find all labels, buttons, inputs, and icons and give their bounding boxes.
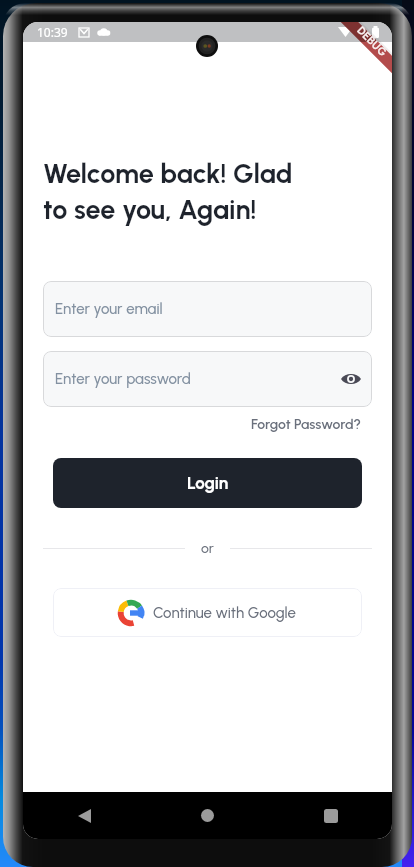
button[interactable]: Back <box>23 792 146 839</box>
staticText: Login <box>187 473 229 493</box>
button[interactable]: Forgot Password? <box>251 416 361 433</box>
button[interactable]: Login <box>53 458 362 508</box>
staticText: or <box>201 540 214 557</box>
button[interactable]: Enter your password <box>43 351 372 407</box>
staticText: Welcome back! Glad to see you, Again! <box>43 157 293 226</box>
button[interactable]: Recent apps <box>269 792 392 839</box>
button[interactable]: Home <box>146 792 269 839</box>
staticText: Forgot Password? <box>251 416 361 433</box>
staticText: Enter your password <box>55 370 191 388</box>
staticText: Enter your email <box>55 300 163 318</box>
staticText: DEBUG <box>354 24 390 59</box>
staticText: Continue with Google <box>153 604 296 622</box>
staticText: 10:39 <box>37 24 68 40</box>
button[interactable]: Continue with Google <box>53 588 362 637</box>
button[interactable]: Show password <box>340 368 362 390</box>
button[interactable]: Enter your email <box>43 281 372 337</box>
